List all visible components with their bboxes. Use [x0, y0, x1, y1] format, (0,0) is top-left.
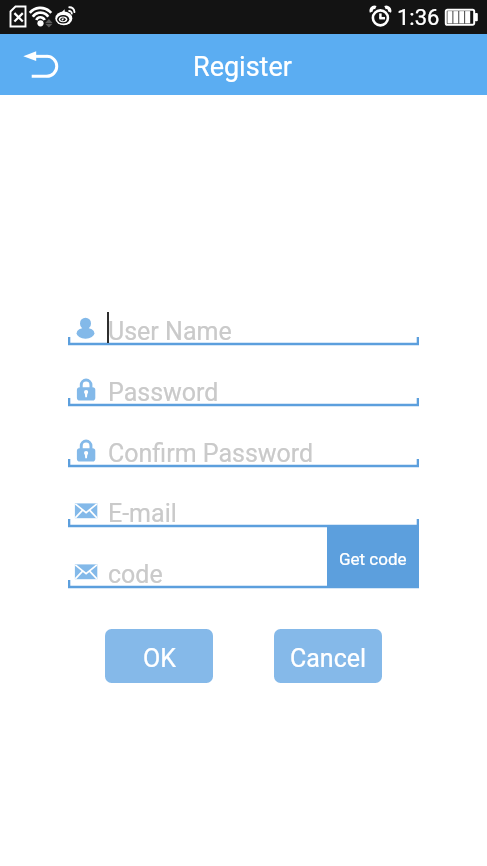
staticText: E-mail: [108, 499, 177, 528]
staticText: Password: [108, 378, 219, 407]
staticText: Confirm Password: [108, 439, 314, 468]
staticText: Cancel: [290, 644, 367, 673]
button[interactable]: Get code: [327, 527, 419, 588]
button[interactable]: Password: [68, 357, 419, 409]
staticText: Register: [193, 51, 292, 83]
button[interactable]: Confirm Password: [68, 418, 419, 470]
button[interactable]: Cancel: [274, 629, 382, 683]
button[interactable]: E-mail: [68, 478, 419, 530]
button[interactable]: Back: [8, 38, 70, 92]
button[interactable]: User Name: [68, 296, 419, 348]
staticText: code: [108, 560, 163, 589]
staticText: Get code: [339, 549, 407, 569]
button[interactable]: code: [68, 539, 419, 591]
staticText: OK: [143, 644, 176, 673]
staticText: User Name: [108, 317, 232, 346]
button[interactable]: OK: [105, 629, 213, 683]
staticText: 1:36: [397, 5, 440, 31]
